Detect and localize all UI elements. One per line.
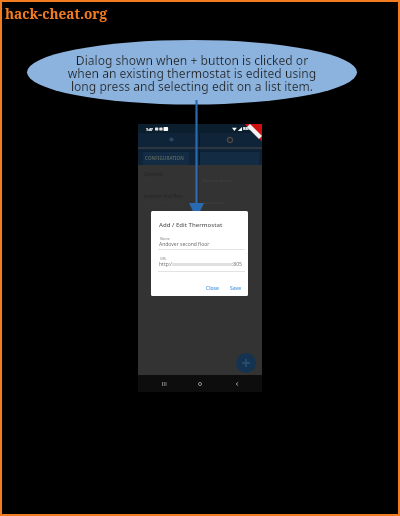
button[interactable]: Settings [220,134,240,145]
staticText: Add / Edit Thermostat [159,221,223,229]
staticText: http:/ [159,261,172,268]
button[interactable]: Thermostats [161,134,181,145]
staticText: :805 [232,261,242,268]
staticText: General [144,171,163,178]
button[interactable]: CONFIGURATION [143,152,189,165]
staticText: Andover second floor [159,241,210,248]
staticText: connected [203,200,224,206]
staticText: Dialog shown when + button is clicked or… [52,52,332,95]
staticText: Andover first floor [144,193,184,199]
staticText: 1:47 [146,127,153,132]
staticText: Save [230,285,242,292]
button[interactable]: General [138,167,262,187]
staticText: CONFIGURATION [145,155,184,161]
button[interactable]: Back [226,377,248,391]
button[interactable]: Recents [153,377,175,391]
staticText: Name [160,236,170,241]
staticText: 88% [243,126,252,132]
staticText: URL [160,256,167,261]
button[interactable]: Add thermostat [236,353,256,373]
staticText: Close [206,285,219,292]
button[interactable]: Close [206,285,219,292]
button[interactable]: Save [230,285,242,292]
staticText: hack-cheat.org [5,4,107,23]
button[interactable]: Home [189,377,211,391]
button[interactable]: Andover first floor [138,189,262,209]
